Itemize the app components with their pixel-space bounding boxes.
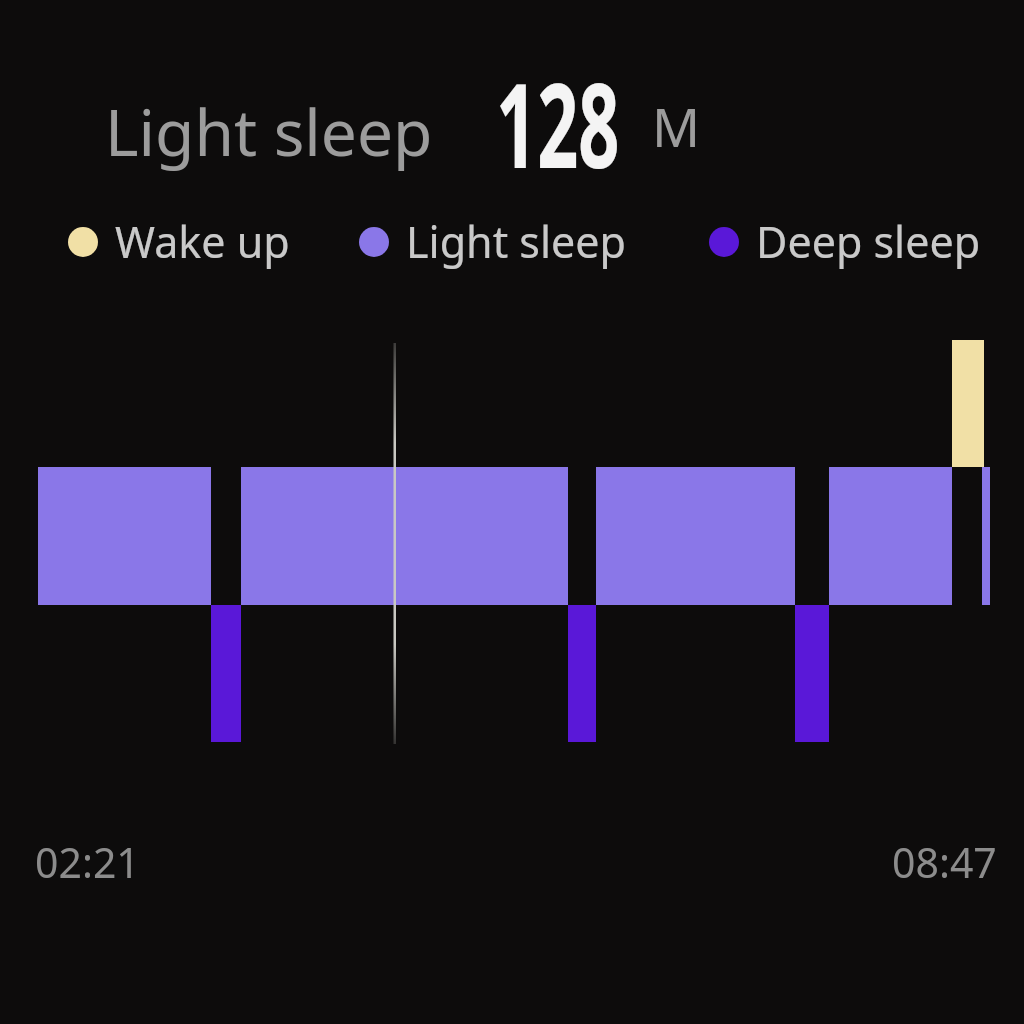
button[interactable]: Deep sleep xyxy=(709,212,981,271)
button[interactable]: Light sleep xyxy=(359,212,626,271)
button[interactable]: Wake up xyxy=(68,212,290,271)
staticText: 128 xyxy=(496,44,620,202)
staticText: M xyxy=(652,90,701,162)
staticText: Deep sleep xyxy=(756,212,981,271)
staticText: Wake up xyxy=(115,212,290,271)
staticText: 08:47 xyxy=(892,834,997,890)
staticText: 02:21 xyxy=(35,834,140,890)
staticText: Light sleep xyxy=(105,88,433,175)
staticText: Light sleep xyxy=(406,212,626,271)
